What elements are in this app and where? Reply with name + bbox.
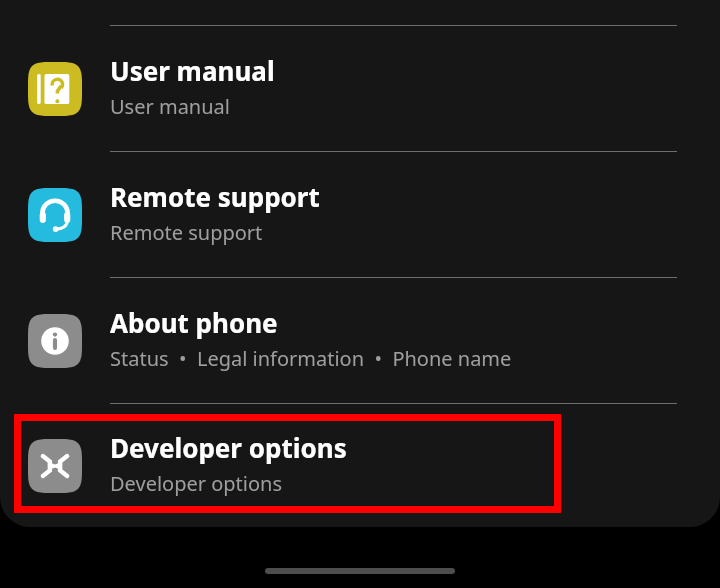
staticText: Remote support xyxy=(110,219,263,246)
other: Developer options highlight xyxy=(0,0,720,588)
button[interactable]: About phone xyxy=(0,278,720,403)
staticText: User manual xyxy=(110,53,275,88)
button[interactable]: Developer options xyxy=(0,404,720,527)
staticText: Remote support xyxy=(110,179,320,214)
staticText: Developer options xyxy=(110,430,347,465)
staticText: User manual xyxy=(110,93,230,120)
staticText: Status • Legal information • Phone name xyxy=(110,345,512,372)
staticText: Developer options xyxy=(110,470,283,497)
button[interactable]: Remote support xyxy=(0,152,720,277)
button[interactable]: User manual xyxy=(0,26,720,151)
staticText: About phone xyxy=(110,305,278,340)
